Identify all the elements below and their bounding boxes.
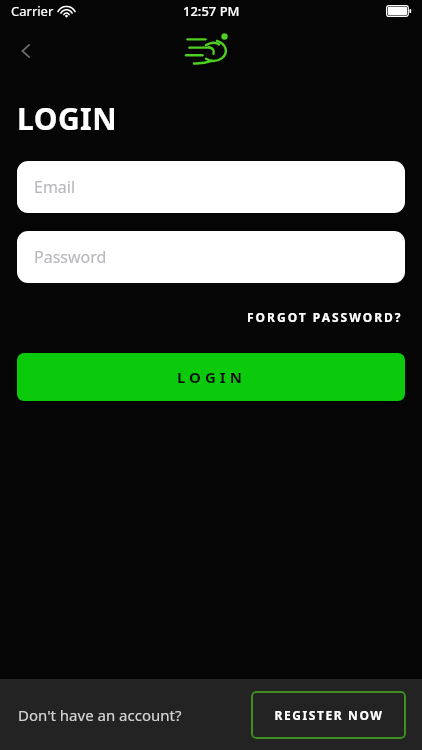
button[interactable]: Email: [17, 161, 405, 213]
staticText: LOGIN: [17, 98, 118, 139]
button[interactable]: LOGIN: [17, 353, 405, 401]
staticText: 12:57 PM: [183, 2, 240, 20]
staticText: LOGIN: [177, 367, 246, 387]
button[interactable]: Back: [6, 31, 46, 71]
button[interactable]: REGISTER NOW: [251, 691, 406, 739]
staticText: Don't have an account?: [18, 705, 182, 725]
staticText: FORGOT PASSWORD?: [247, 309, 403, 325]
staticText: Password: [34, 246, 107, 268]
staticText: REGISTER NOW: [274, 707, 384, 723]
button[interactable]: Password: [17, 231, 405, 283]
button[interactable]: FORGOT PASSWORD?: [245, 305, 405, 329]
staticText: Email: [34, 176, 76, 198]
staticText: Carrier: [11, 2, 54, 20]
